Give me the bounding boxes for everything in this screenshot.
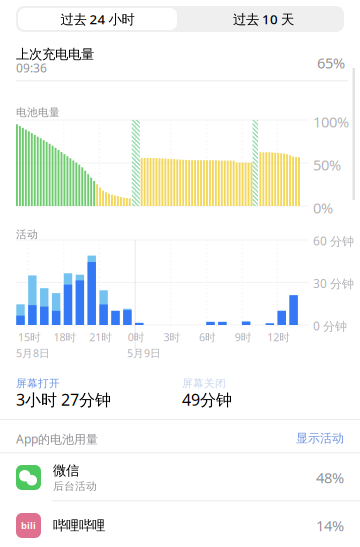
staticText: 18时 xyxy=(53,330,76,344)
staticText: App的电池用量 xyxy=(16,431,98,447)
staticText: 12时 xyxy=(267,330,290,344)
staticText: 屏幕关闭 xyxy=(182,377,226,390)
staticText: 65% xyxy=(317,53,345,72)
staticText: 14% xyxy=(316,516,344,535)
staticText: 5月9日 xyxy=(127,346,161,360)
staticText: 100% xyxy=(313,112,349,131)
staticText: 活动 xyxy=(16,228,38,241)
button[interactable]: bili xyxy=(0,502,360,547)
staticText: 显示活动 xyxy=(296,431,344,446)
staticText: 电池电量 xyxy=(16,106,60,119)
staticText: 49分钟 xyxy=(182,389,232,410)
staticText: 50% xyxy=(313,155,341,174)
button[interactable]: 过去 10 天 xyxy=(184,8,343,30)
staticText: 后台活动 xyxy=(53,480,97,493)
staticText: 60 分钟 xyxy=(313,233,354,249)
staticText: 3小时 27分钟 xyxy=(16,389,111,410)
staticText: 48% xyxy=(316,468,344,487)
staticText: 0% xyxy=(313,198,333,217)
staticText: 21时 xyxy=(89,330,112,344)
button[interactable]: 微信 xyxy=(0,454,360,501)
staticText: 哔哩哔哩 xyxy=(53,517,105,534)
staticText: bili xyxy=(21,519,36,532)
staticText: 5月8日 xyxy=(16,346,50,360)
button[interactable]: 过去 24 小时 xyxy=(18,8,177,30)
staticText: 09:36 xyxy=(16,60,47,76)
staticText: 6时 xyxy=(199,330,216,344)
staticText: 9时 xyxy=(235,330,252,344)
staticText: 0时 xyxy=(128,330,145,344)
staticText: 30 分钟 xyxy=(313,275,354,291)
staticText: 屏幕打开 xyxy=(16,377,60,390)
staticText: 0 分钟 xyxy=(313,318,347,334)
staticText: 上次充电电量 xyxy=(16,46,94,62)
staticText: 过去 10 天 xyxy=(233,10,294,28)
staticText: 3时 xyxy=(163,330,180,344)
button[interactable]: 显示活动 xyxy=(284,431,344,446)
staticText: 微信 xyxy=(53,462,79,479)
staticText: 过去 24 小时 xyxy=(60,10,134,28)
staticText: 15时 xyxy=(18,330,41,344)
